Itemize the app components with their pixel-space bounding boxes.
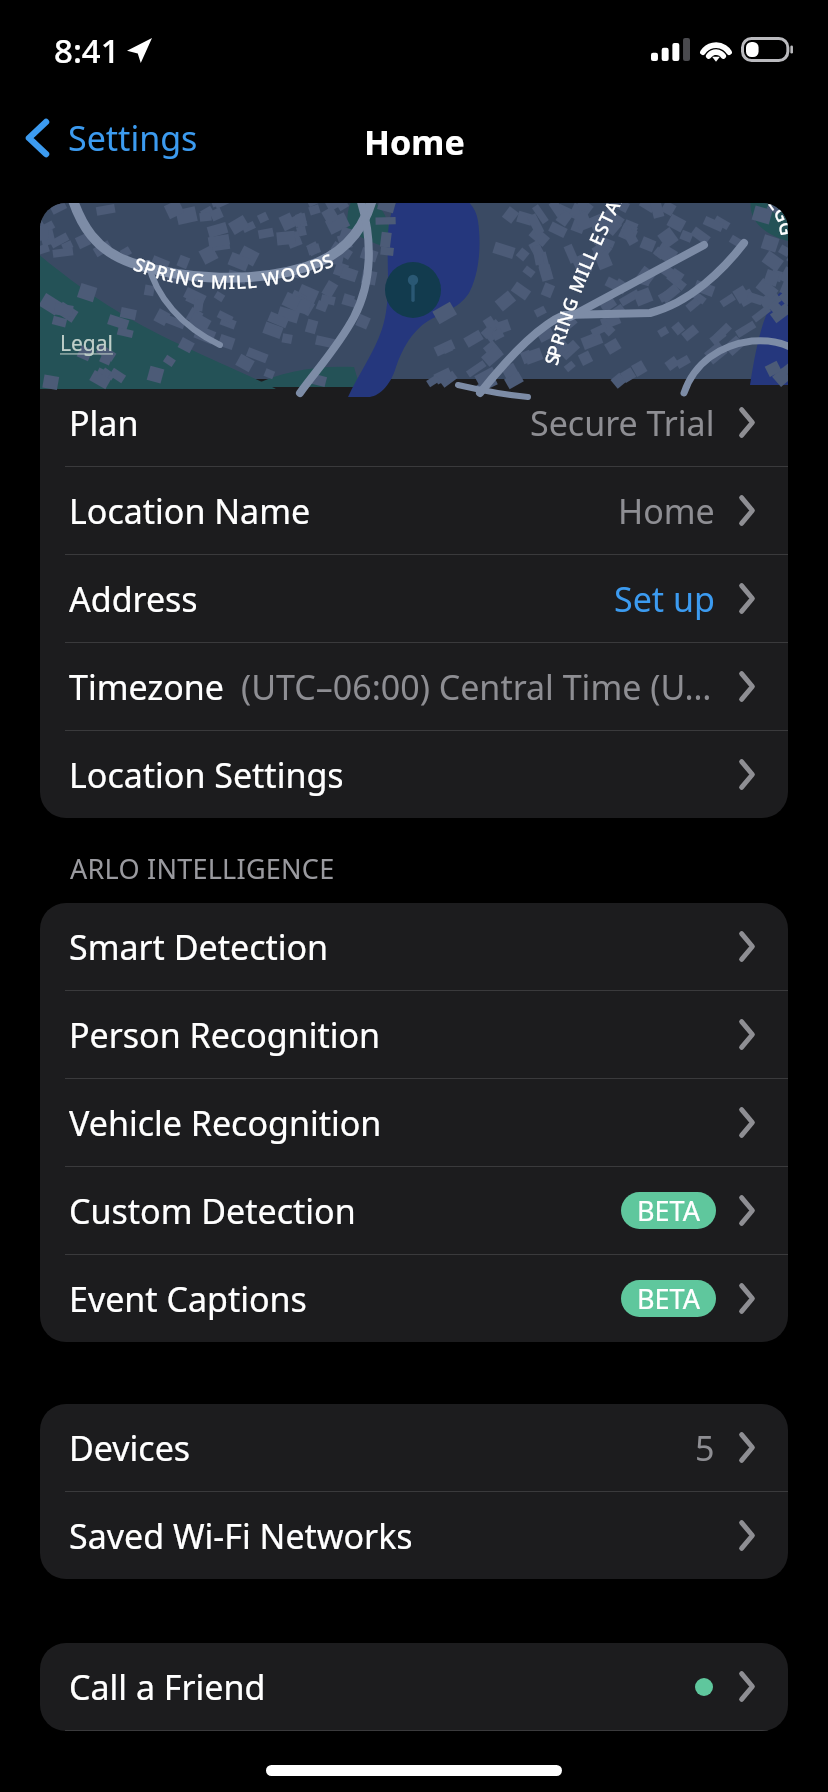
- staticText: Event Captions: [69, 1276, 307, 1322]
- staticText: Secure Trial: [530, 400, 715, 446]
- button[interactable]: Devices: [40, 1404, 788, 1491]
- button[interactable]: Vehicle Recognition: [40, 1079, 788, 1166]
- staticText: Call a Friend: [69, 1664, 266, 1710]
- staticText: Person Recognition: [69, 1012, 381, 1058]
- button[interactable]: Timezone: [40, 643, 788, 730]
- button[interactable]: Map: [40, 203, 788, 379]
- staticText: Address: [69, 576, 198, 622]
- button[interactable]: Smart Detection: [40, 903, 788, 990]
- staticText: Saved Wi-Fi Networks: [69, 1513, 413, 1559]
- staticText: 8:41: [54, 28, 120, 73]
- button[interactable]: Address: [40, 555, 788, 642]
- staticText: Vehicle Recognition: [69, 1100, 382, 1146]
- button[interactable]: Event Captions: [40, 1255, 788, 1342]
- staticText: BETA: [637, 1192, 700, 1229]
- staticText: Timezone: [69, 664, 225, 710]
- staticText: Custom Detection: [69, 1188, 356, 1234]
- staticText: 5: [695, 1425, 715, 1471]
- staticText: Smart Detection: [69, 924, 329, 970]
- button[interactable]: Saved Wi-Fi Networks: [40, 1492, 788, 1579]
- staticText: Location Settings: [69, 752, 344, 798]
- button[interactable]: Custom Detection: [40, 1167, 788, 1254]
- button[interactable]: Settings: [0, 108, 218, 168]
- staticText: Set up: [614, 576, 715, 622]
- staticText: Home: [364, 119, 465, 165]
- button[interactable]: Call a Friend: [40, 1643, 788, 1730]
- button[interactable]: Plan: [40, 379, 788, 466]
- staticText: ARLO INTELLIGENCE: [70, 850, 335, 887]
- button[interactable]: Person Recognition: [40, 991, 788, 1078]
- staticText: BETA: [637, 1280, 700, 1317]
- staticText: Devices: [69, 1425, 191, 1471]
- button[interactable]: Location Settings: [40, 731, 788, 818]
- button[interactable]: Location Name: [40, 467, 788, 554]
- staticText: Home: [618, 488, 715, 534]
- staticText: (UTC–06:00) Central Time (U…: [241, 664, 729, 710]
- staticText: Location Name: [69, 488, 311, 534]
- button[interactable]: Legal: [60, 329, 113, 358]
- staticText: Plan: [69, 400, 139, 446]
- staticText: Settings: [68, 115, 198, 161]
